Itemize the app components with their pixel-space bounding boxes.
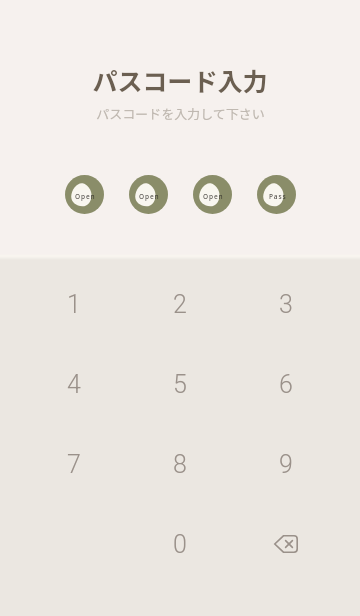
staticText: 2 <box>173 290 187 319</box>
staticText: 8 <box>173 450 187 479</box>
button[interactable]: 0 <box>140 504 220 584</box>
staticText: 6 <box>279 370 293 399</box>
button[interactable]: Delete <box>246 504 326 584</box>
staticText: パスコードを入力して下さい <box>96 104 265 123</box>
staticText: 7 <box>67 450 81 479</box>
staticText: Open <box>75 192 96 201</box>
button[interactable]: 6 <box>246 344 326 424</box>
staticText: 0 <box>173 530 187 559</box>
button[interactable]: 2 <box>140 264 220 344</box>
staticText: 4 <box>67 370 81 399</box>
button[interactable]: 3 <box>246 264 326 344</box>
staticText: 5 <box>173 370 187 399</box>
staticText: パスコード入力 <box>92 62 268 98</box>
staticText: 1 <box>67 290 81 319</box>
button[interactable]: 1 <box>34 264 114 344</box>
button[interactable]: 9 <box>246 424 326 504</box>
button[interactable]: 7 <box>34 424 114 504</box>
staticText: Pass <box>269 192 287 201</box>
staticText: 3 <box>279 290 293 319</box>
staticText: 9 <box>279 450 293 479</box>
staticText: Open <box>203 192 224 201</box>
button[interactable]: 8 <box>140 424 220 504</box>
button[interactable]: 4 <box>34 344 114 424</box>
button[interactable]: 5 <box>140 344 220 424</box>
staticText: Open <box>139 192 160 201</box>
